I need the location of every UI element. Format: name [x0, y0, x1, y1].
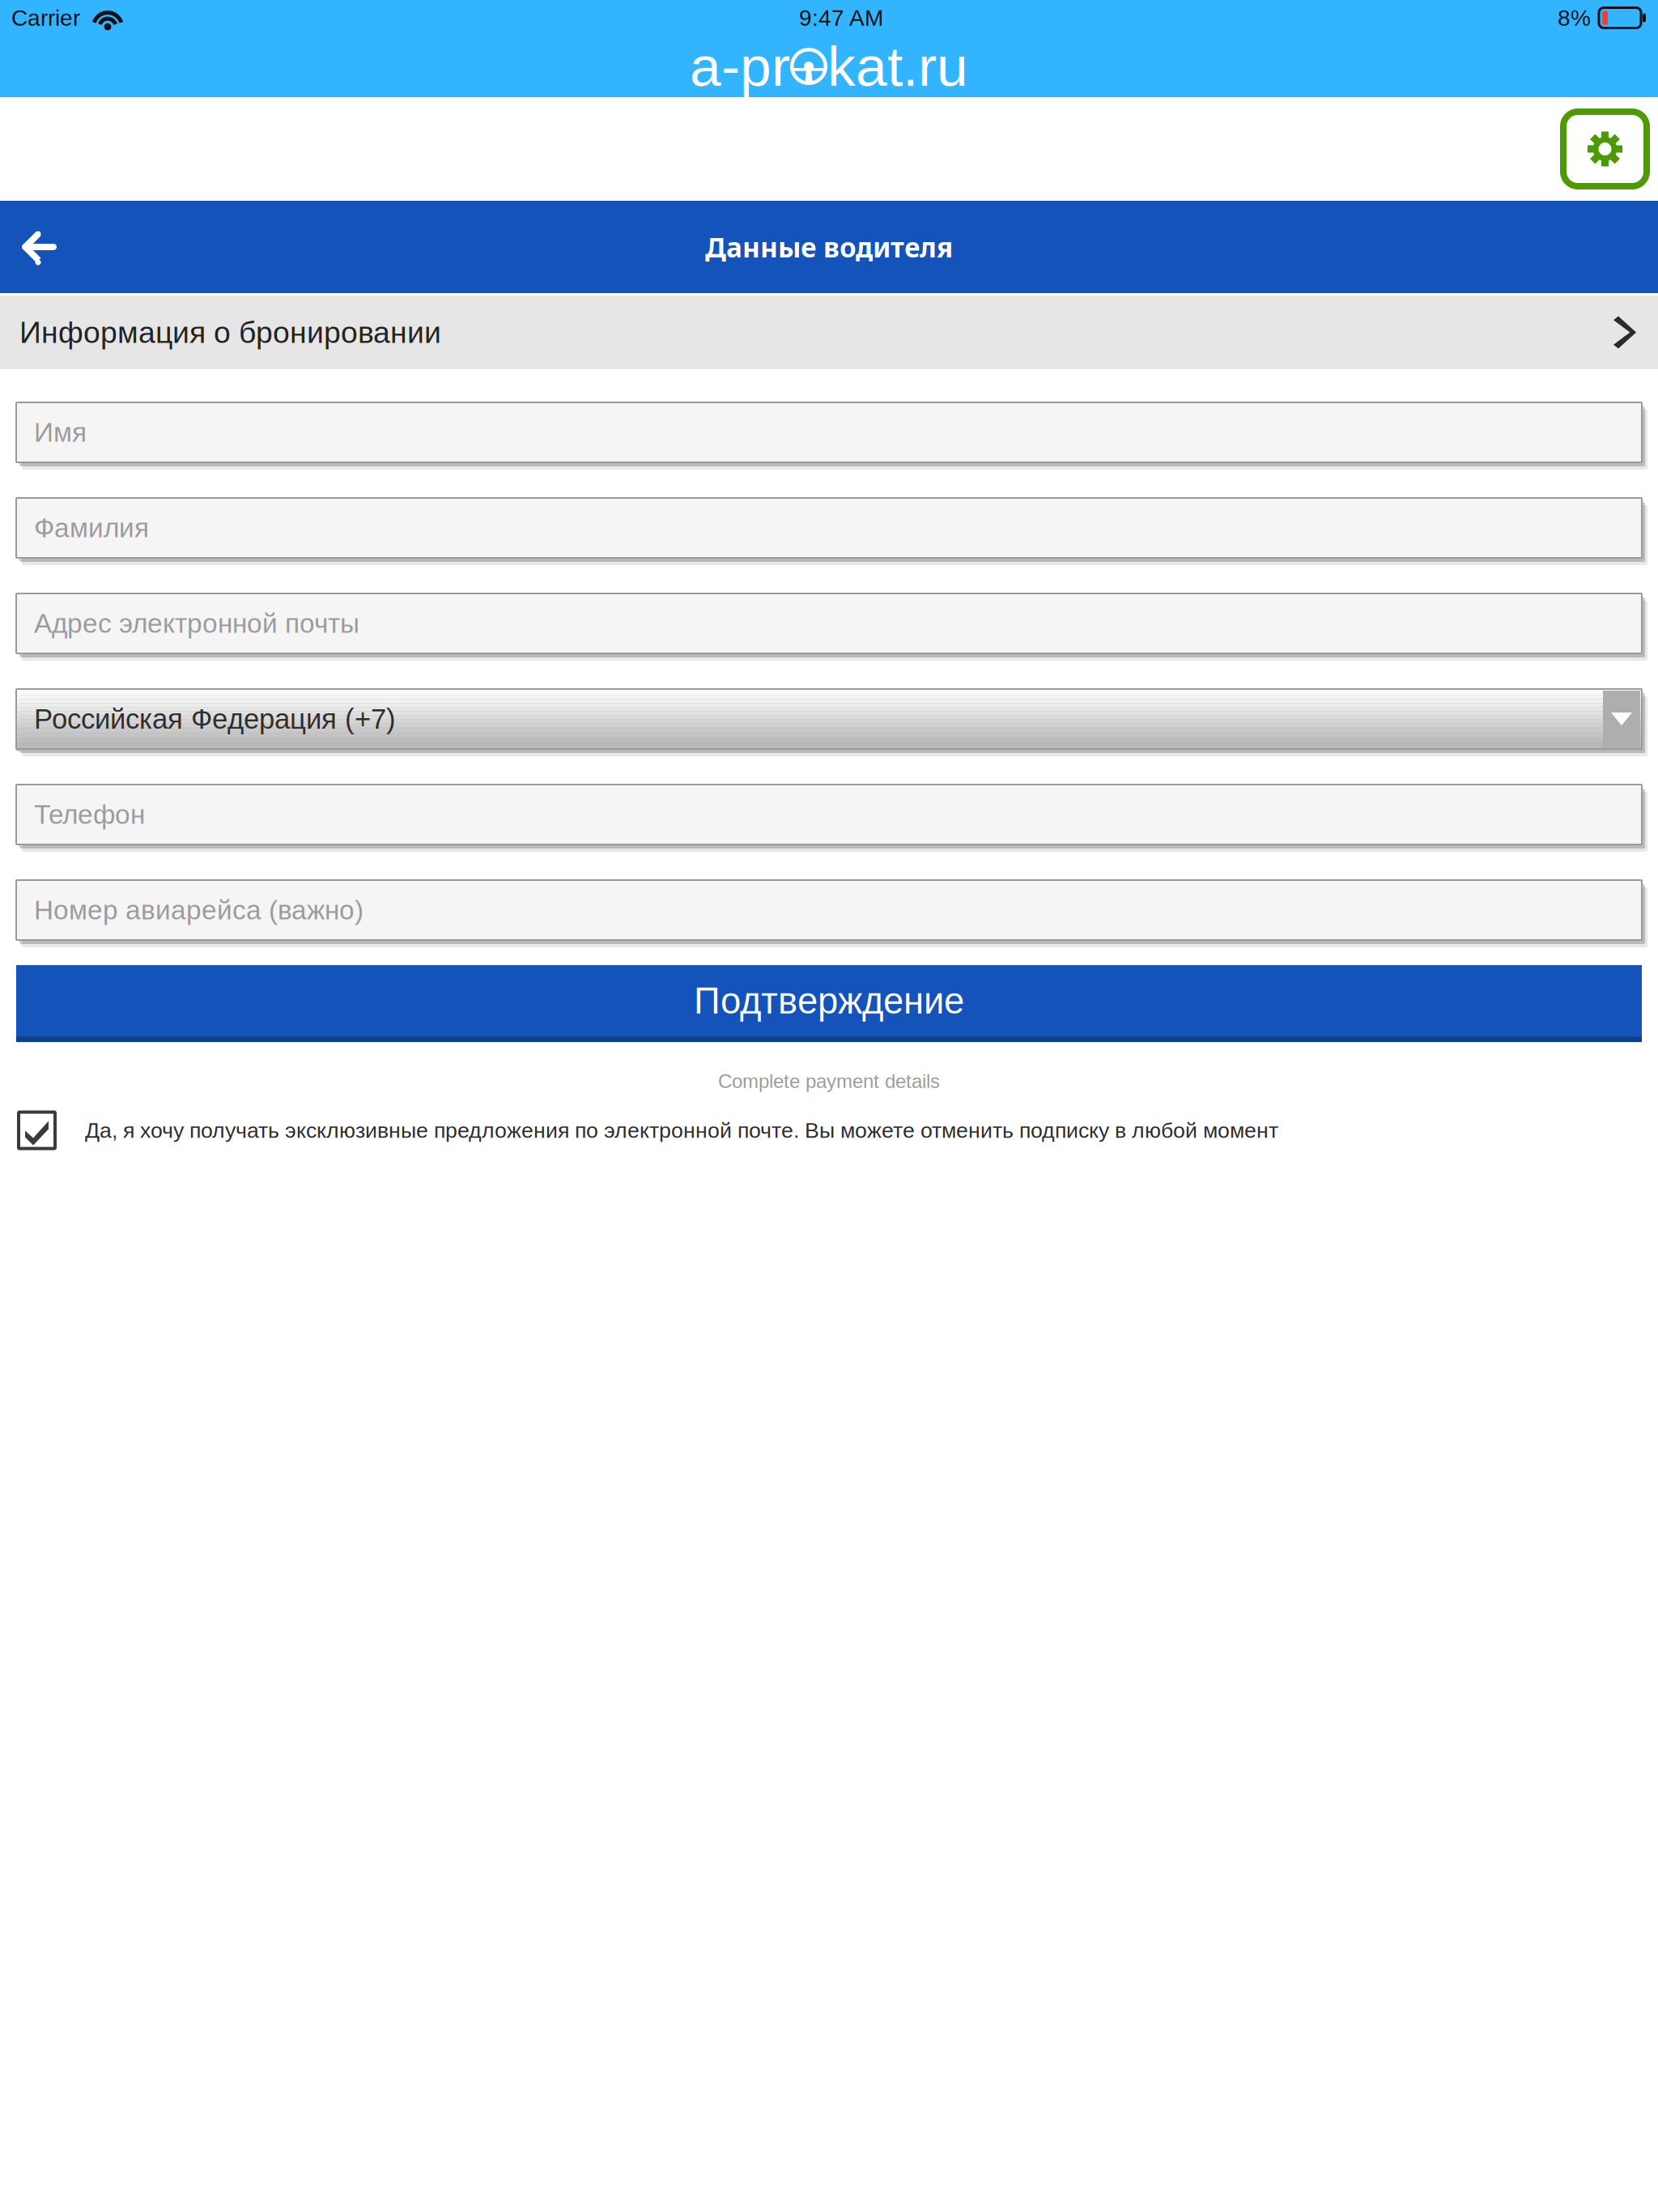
staticText: Complete payment details	[718, 1070, 940, 1092]
button[interactable]: Номер авиарейса (важно)	[16, 880, 1649, 949]
staticText: Подтверждение	[694, 980, 964, 1021]
button[interactable]: Settings	[1563, 112, 1647, 186]
staticText: Адрес электронной почты	[34, 608, 359, 639]
staticText: 8%	[1558, 5, 1591, 31]
button[interactable]: Да, я хочу получать эксклюзивные предлож…	[0, 1102, 1658, 1159]
staticText: Фамилия	[34, 513, 149, 543]
button[interactable]: Имя	[16, 402, 1649, 471]
staticText: 9:47 AM	[799, 5, 883, 31]
staticText: Номер авиарейса (важно)	[34, 895, 363, 925]
button[interactable]: Телефон	[16, 785, 1649, 853]
button[interactable]: Информация о бронировании	[0, 296, 1658, 369]
staticText: Телефон	[34, 799, 145, 830]
button[interactable]: Back	[0, 225, 60, 269]
staticText: Да, я хочу получать эксклюзивные предлож…	[85, 1118, 1278, 1142]
staticText: Информация о бронировании	[19, 315, 441, 349]
button[interactable]: Подтверждение	[16, 965, 1642, 1042]
staticText: Carrier	[11, 5, 80, 31]
staticText: Российская Федерация (+7)	[34, 703, 396, 735]
staticText: Данные водителя	[705, 229, 953, 265]
staticText: Имя	[34, 417, 87, 447]
staticText: a-pr	[690, 35, 790, 98]
button[interactable]: Российская Федерация (+7)	[16, 689, 1649, 758]
button[interactable]: Фамилия	[16, 498, 1649, 567]
staticText: kat.ru	[827, 35, 968, 98]
button[interactable]: Адрес электронной почты	[16, 593, 1649, 662]
